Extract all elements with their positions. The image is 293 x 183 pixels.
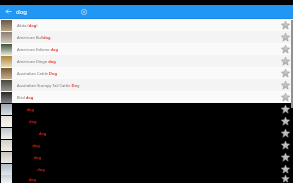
button[interactable]: Akita (dog) [0, 19, 293, 31]
button[interactable]: Clear search [77, 5, 90, 18]
button[interactable]: Favourite [279, 151, 292, 163]
button[interactable]: Favourite [279, 55, 292, 67]
button[interactable]: Favourite [279, 139, 292, 151]
staticText: dog [16, 8, 28, 16]
button[interactable]: Bull Terrier dog [0, 127, 293, 139]
button[interactable]: American Bulldog [0, 31, 293, 43]
button[interactable]: American Eskimo dog [0, 43, 293, 55]
staticText: Blue dog [17, 107, 34, 112]
button[interactable]: Favourite [279, 31, 292, 43]
button[interactable]: Favourite [279, 115, 292, 127]
button[interactable]: Canaan dog [0, 139, 293, 151]
button[interactable]: Favourite [279, 43, 292, 55]
button[interactable]: Favourite [279, 175, 292, 183]
button[interactable]: Favourite [279, 91, 292, 103]
staticText: Bull Terrier dog [17, 131, 47, 136]
button[interactable]: Blue dog [0, 103, 293, 115]
staticText: American Eskimo dog [17, 47, 58, 52]
button[interactable]: Australian Stumpy Tail Cattle Dog [0, 79, 293, 91]
staticText: Boxer dog [17, 119, 37, 124]
button[interactable]: Favourite [279, 19, 292, 31]
button[interactable]: Favourite [279, 163, 292, 175]
button[interactable]: Back [0, 5, 16, 18]
button[interactable]: Boxer dog [0, 115, 293, 127]
button[interactable]: Favourite [279, 127, 292, 139]
staticText: Australian Stumpy Tail Cattle Dog [17, 83, 80, 88]
staticText: Chow dog [17, 177, 37, 182]
button[interactable]: Favourite [279, 103, 292, 115]
staticText: Bird dog [17, 95, 34, 100]
button[interactable]: American Dingo dog [0, 55, 293, 67]
button[interactable]: Chow dog [0, 175, 293, 183]
staticText: American Dingo dog [17, 59, 56, 64]
button[interactable]: Catahoula dog [0, 163, 293, 175]
button[interactable]: Carolina dog [0, 151, 293, 163]
staticText: Canaan dog [17, 143, 40, 148]
staticText: Carolina dog [17, 155, 42, 160]
button[interactable]: Favourite [279, 79, 292, 91]
staticText: American Bulldog [17, 35, 51, 40]
button[interactable]: Australian Cattle Dog [0, 67, 293, 79]
staticText: Australian Cattle Dog [17, 71, 57, 76]
staticText: Akita (dog) [17, 23, 38, 28]
staticText: Catahoula dog [17, 167, 45, 172]
button[interactable]: Bird dog [0, 91, 293, 103]
button[interactable]: Favourite [279, 67, 292, 79]
